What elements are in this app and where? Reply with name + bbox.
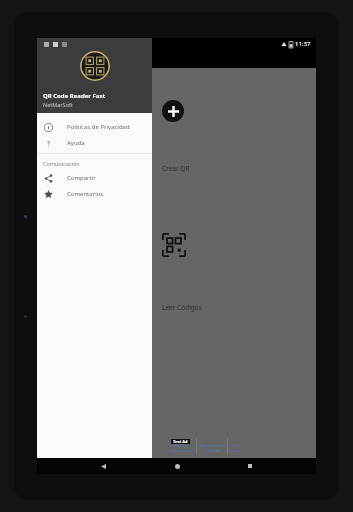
button[interactable]: Recents <box>242 458 258 474</box>
staticText: NetMarSoft <box>43 101 73 108</box>
button[interactable]: Not interested in this ad <box>197 438 227 454</box>
staticText: Políticas de Privacidad <box>67 123 130 131</box>
button[interactable]: Comentarios <box>37 186 152 202</box>
staticText: Compartir <box>67 174 96 182</box>
staticText: QR Code Reader Fast <box>43 92 106 100</box>
button[interactable]: Test Ad <box>164 438 196 454</box>
button[interactable]: See more <box>228 438 244 454</box>
button[interactable]: Compartir <box>37 170 152 186</box>
staticText: See more <box>231 443 241 453</box>
staticText: Test Ad <box>173 439 188 444</box>
button[interactable]: ? <box>37 135 152 151</box>
staticText: Ayuda <box>67 139 85 147</box>
button[interactable]: Leer Códigos <box>162 233 186 257</box>
staticText: Comunicación <box>43 160 80 167</box>
staticText: Comentarios <box>67 190 104 198</box>
button[interactable]: Políticas de Privacidad <box>37 119 152 135</box>
staticText: Crear QR <box>162 164 190 173</box>
button[interactable]: Crear QR <box>162 100 184 122</box>
staticText: Leer Códigos <box>162 303 202 312</box>
button[interactable]: Back <box>95 458 111 474</box>
staticText: Anuncio inapropiado <box>169 443 192 453</box>
staticText: ? <box>47 139 51 148</box>
staticText: 11:37 <box>295 40 311 48</box>
button[interactable]: Home <box>169 458 185 474</box>
staticText: Not interested in this ad <box>198 443 226 453</box>
